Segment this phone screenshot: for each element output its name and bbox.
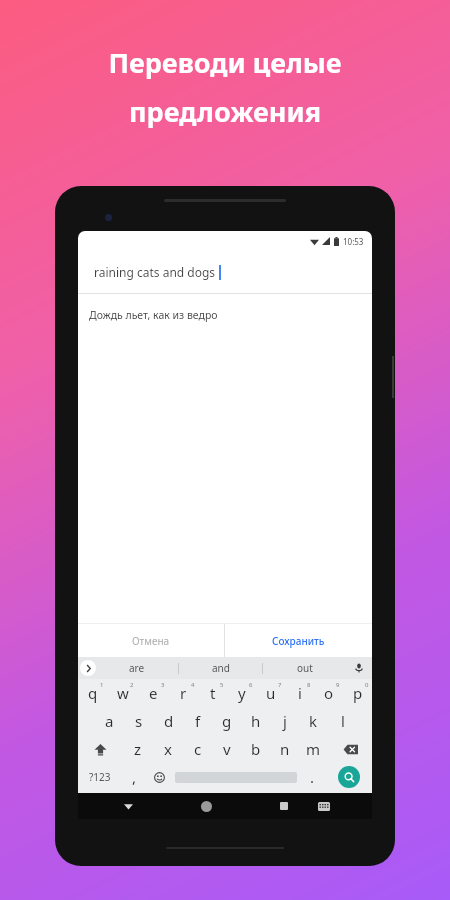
staticText: raining cats and dogs [94, 264, 216, 280]
button[interactable]: w [108, 679, 138, 707]
staticText: y [238, 683, 246, 703]
staticText: 10:53 [343, 236, 364, 247]
button[interactable]: h [241, 707, 270, 735]
button[interactable]: ?123 [78, 763, 122, 791]
button[interactable]: g [212, 707, 241, 735]
staticText: w [117, 683, 129, 703]
button[interactable]: Switch keyboard [312, 794, 336, 818]
button[interactable]: More suggestions [80, 660, 96, 676]
button[interactable]: k [299, 707, 328, 735]
staticText: h [251, 711, 261, 731]
button[interactable]: Voice input [346, 657, 372, 679]
button[interactable]: t [198, 679, 227, 707]
staticText: 9 [336, 681, 340, 689]
staticText: 6 [249, 681, 253, 689]
button[interactable]: Recent apps [272, 794, 296, 818]
staticText: p [353, 683, 363, 703]
staticText: m [306, 739, 321, 759]
staticText: o [324, 683, 334, 703]
button[interactable]: r [168, 679, 198, 707]
staticText: предложения [129, 93, 321, 130]
button[interactable]: Отмена [78, 624, 224, 657]
staticText: c [194, 739, 202, 759]
button[interactable]: out [263, 657, 346, 679]
staticText: s [135, 711, 143, 731]
staticText: ?123 [89, 770, 111, 784]
staticText: e [149, 683, 158, 703]
button[interactable]: e [138, 679, 168, 707]
button[interactable]: l [328, 707, 357, 735]
staticText: r [180, 683, 187, 703]
staticText: g [222, 711, 232, 731]
button[interactable]: Shift [78, 735, 123, 763]
button[interactable]: j [270, 707, 299, 735]
button[interactable]: x [153, 735, 183, 763]
button[interactable]: f [183, 707, 212, 735]
staticText: k [309, 711, 318, 731]
button[interactable]: . [300, 763, 325, 791]
button[interactable]: , [122, 763, 147, 791]
staticText: l [341, 711, 345, 731]
staticText: Переводи целые [108, 44, 342, 81]
staticText: u [266, 683, 276, 703]
staticText: , [132, 767, 137, 787]
button[interactable]: are [96, 657, 178, 679]
staticText: 5 [220, 681, 224, 689]
staticText: q [88, 683, 98, 703]
staticText: are [129, 661, 145, 675]
staticText: 2 [130, 681, 134, 689]
button[interactable]: y [227, 679, 256, 707]
button[interactable]: i [285, 679, 314, 707]
staticText: v [223, 739, 231, 759]
button[interactable]: q [78, 679, 108, 707]
staticText: 7 [278, 681, 282, 689]
staticText: . [310, 767, 315, 787]
button[interactable]: m [299, 735, 328, 763]
staticText: 1 [100, 681, 104, 689]
button[interactable]: p [343, 679, 372, 707]
staticText: 4 [191, 681, 195, 689]
staticText: x [164, 739, 172, 759]
button[interactable]: u [256, 679, 285, 707]
button[interactable]: Search [338, 766, 360, 788]
button[interactable]: and [179, 657, 262, 679]
staticText: z [134, 739, 142, 759]
button[interactable]: z [123, 735, 153, 763]
button[interactable]: Home [194, 794, 218, 818]
button[interactable]: c [183, 735, 212, 763]
button[interactable]: Emoji [147, 763, 172, 791]
staticText: out [297, 661, 313, 675]
button[interactable]: b [241, 735, 270, 763]
staticText: a [105, 711, 114, 731]
button[interactable]: a [94, 707, 124, 735]
staticText: j [283, 711, 287, 731]
staticText: i [298, 683, 302, 703]
button[interactable]: Сохранить [225, 624, 372, 657]
staticText: Сохранить [272, 634, 325, 648]
button[interactable]: o [314, 679, 343, 707]
staticText: Отмена [132, 634, 170, 648]
staticText: t [210, 683, 216, 703]
staticText: 3 [161, 681, 165, 689]
button[interactable]: d [154, 707, 183, 735]
staticText: and [212, 661, 230, 675]
button[interactable]: s [124, 707, 154, 735]
staticText: d [164, 711, 174, 731]
staticText: f [195, 711, 201, 731]
staticText: 8 [307, 681, 311, 689]
button[interactable]: Backspace [328, 735, 372, 763]
staticText: n [280, 739, 290, 759]
button[interactable]: Back [116, 794, 140, 818]
staticText: b [251, 739, 261, 759]
button[interactable]: n [270, 735, 299, 763]
staticText: Дождь льет, как из ведро [89, 308, 218, 322]
button[interactable]: raining cats and dogs [78, 251, 372, 293]
staticText: 0 [365, 681, 369, 689]
button[interactable]: v [212, 735, 241, 763]
